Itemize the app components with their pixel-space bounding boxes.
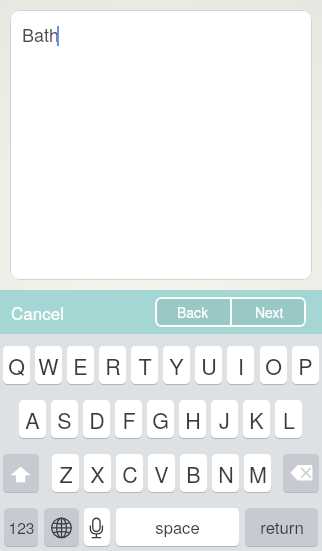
staticText: Bath (22, 21, 59, 47)
staticText: X (90, 458, 105, 489)
button[interactable]: O (260, 346, 287, 384)
staticText: V (154, 458, 169, 489)
button[interactable]: M (244, 454, 271, 492)
staticText: B (186, 458, 201, 489)
button[interactable]: Next (232, 297, 306, 327)
staticText: Cancel (11, 300, 64, 324)
staticText: Back (177, 302, 209, 322)
button[interactable]: Y (163, 346, 190, 384)
staticText: return (260, 515, 304, 539)
button[interactable]: H (179, 400, 206, 438)
staticText: F (122, 404, 136, 435)
staticText: Next (255, 302, 284, 322)
button[interactable]: Back (155, 297, 230, 327)
staticText: H (185, 404, 201, 435)
button[interactable]: space (116, 508, 239, 546)
button[interactable]: I (227, 346, 254, 384)
staticText: K (249, 404, 264, 435)
button[interactable]: B (180, 454, 207, 492)
staticText: Q (8, 350, 25, 381)
staticText: space (155, 515, 200, 539)
staticText: E (73, 350, 88, 381)
button[interactable]: W (35, 346, 62, 384)
staticText: S (57, 404, 72, 435)
button[interactable]: Q (3, 346, 30, 384)
staticText: 123 (8, 516, 35, 538)
staticText: D (89, 404, 105, 435)
button[interactable]: V (148, 454, 175, 492)
staticText: J (219, 404, 230, 435)
staticText: Y (169, 350, 184, 381)
button[interactable]: K (243, 400, 270, 438)
staticText: U (201, 350, 217, 381)
staticText: N (218, 458, 234, 489)
button[interactable]: G (147, 400, 174, 438)
button[interactable]: F (115, 400, 142, 438)
staticText: P (298, 350, 313, 381)
staticText: M (249, 458, 267, 489)
staticText: Z (59, 458, 73, 489)
button[interactable]: 123 (4, 508, 38, 546)
staticText: I (238, 350, 244, 381)
button[interactable]: U (195, 346, 222, 384)
button[interactable]: D (83, 400, 110, 438)
button[interactable]: L (275, 400, 302, 438)
button[interactable]: T (131, 346, 158, 384)
button[interactable]: P (292, 346, 319, 384)
button[interactable]: Shift (3, 454, 39, 492)
staticText: T (138, 350, 152, 381)
button[interactable]: X (84, 454, 111, 492)
staticText: O (265, 350, 282, 381)
button[interactable]: return (245, 508, 318, 546)
button[interactable]: C (116, 454, 143, 492)
button[interactable]: Dictate (84, 508, 110, 546)
button[interactable]: Cancel (3, 294, 72, 330)
staticText: W (38, 350, 59, 381)
staticText: C (122, 458, 138, 489)
button[interactable]: S (51, 400, 78, 438)
button[interactable]: Z (52, 454, 79, 492)
button[interactable]: Bath (10, 10, 312, 280)
button[interactable]: R (99, 346, 126, 384)
button[interactable]: A (19, 400, 46, 438)
button[interactable]: Switch keyboard (44, 508, 79, 546)
staticText: L (283, 404, 295, 435)
button[interactable]: Backspace (283, 454, 319, 492)
staticText: R (105, 350, 121, 381)
button[interactable]: J (211, 400, 238, 438)
staticText: A (25, 404, 40, 435)
button[interactable]: N (212, 454, 239, 492)
staticText: G (152, 404, 169, 435)
button[interactable]: E (67, 346, 94, 384)
